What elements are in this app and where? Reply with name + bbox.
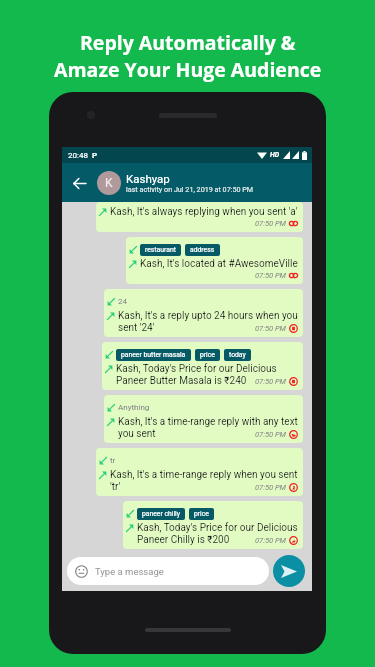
button[interactable]: Send	[273, 555, 305, 587]
button[interactable]: paneer butter masala	[102, 342, 303, 390]
staticText: paneer chilly	[142, 510, 180, 518]
staticText: P	[92, 151, 98, 160]
staticText: address	[190, 246, 215, 254]
staticText: 24	[118, 297, 127, 306]
staticText: Anything	[118, 403, 150, 412]
staticText: restaurant	[145, 246, 176, 254]
staticText: price	[194, 510, 209, 518]
button[interactable]: Kash, It's always replying when you sent…	[96, 202, 303, 232]
staticText: Kash, It's a time-range reply with any t…	[118, 416, 298, 428]
staticText: Type a message	[95, 566, 164, 577]
staticText: Kash, It's located at #AwesomeVille	[140, 258, 298, 270]
staticText: 20:48	[68, 151, 88, 160]
staticText: HD	[270, 151, 280, 159]
button[interactable]: 24	[104, 289, 303, 337]
staticText: 07:50 PM	[255, 219, 286, 228]
button[interactable]: Anything	[104, 395, 303, 443]
staticText: 07:50 PM	[255, 536, 286, 545]
staticText: Paneer Chilly is ₹200	[137, 534, 230, 546]
staticText: Kash, Today's Price for our Delicious	[137, 522, 298, 534]
button[interactable]: Type a message	[67, 557, 269, 585]
button[interactable]: Back	[65, 169, 93, 197]
staticText: price	[200, 351, 215, 359]
staticText: Kash, It's a time-range reply when you s…	[110, 469, 298, 481]
button[interactable]: paneer chilly	[123, 501, 303, 549]
staticText: paneer butter masala	[121, 351, 186, 359]
staticText: Amaze Your Huge Audience	[54, 56, 322, 83]
staticText: Reply Automatically &	[80, 29, 296, 56]
staticText: Kash, It's always replying when you sent…	[110, 206, 298, 218]
staticText: last activity on Jul 21, 2019 at 07:50 P…	[126, 185, 254, 193]
staticText: 07:50 PM	[255, 271, 286, 280]
button[interactable]: tr	[96, 448, 303, 496]
staticText: 07:50 PM	[255, 483, 286, 492]
staticText: today	[229, 351, 246, 359]
staticText: Kashyap	[126, 172, 170, 185]
staticText: Paneer Butter Masala is ₹240	[116, 375, 247, 387]
staticText: 07:50 PM	[255, 430, 286, 439]
staticText: 07:50 PM	[255, 377, 286, 386]
staticText: tr	[110, 456, 116, 465]
staticText: K	[105, 176, 113, 190]
button[interactable]: restaurant	[126, 237, 303, 284]
staticText: 07:50 PM	[255, 324, 286, 333]
staticText: Kash, It's a reply upto 24 hours when yo…	[118, 310, 298, 322]
staticText: you sent	[118, 428, 156, 440]
staticText: 'tr'	[110, 481, 121, 493]
staticText: sent '24'	[118, 322, 155, 334]
staticText: Kash, Today's Price for our Delicious	[116, 363, 277, 375]
